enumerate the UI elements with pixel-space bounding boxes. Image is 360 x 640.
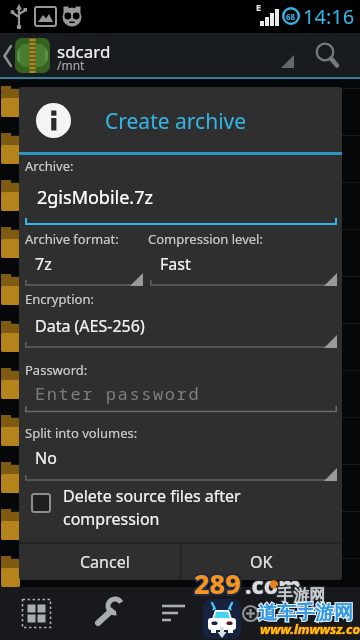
button[interactable]: OK — [181, 544, 342, 580]
button[interactable] — [22, 599, 51, 628]
button[interactable]: sdcard — [0, 33, 360, 79]
staticText: 2gisMobile.7z — [37, 185, 153, 210]
button[interactable]: No — [25, 443, 337, 481]
staticText: 手游网 — [277, 586, 325, 606]
staticText: /mnt — [57, 57, 85, 73]
button[interactable]: Cancel — [24, 544, 185, 580]
staticText: Cancel — [80, 551, 130, 573]
staticText: Encryption: — [25, 290, 94, 308]
staticText: sdcard — [57, 40, 111, 63]
staticText: 289 — [194, 565, 241, 602]
button[interactable] — [313, 41, 341, 69]
staticText: 道车手游网 — [258, 601, 353, 625]
staticText: .com — [245, 569, 301, 600]
staticText: Enter password — [35, 382, 201, 405]
staticText: Create archive — [105, 107, 247, 136]
button[interactable]: 2gisMobile.7z — [25, 175, 337, 226]
staticText: E — [256, 1, 262, 13]
button[interactable] — [203, 599, 241, 639]
staticText: 手游网 — [277, 586, 325, 606]
staticText: Data (AES-256) — [35, 315, 145, 337]
staticText: 道车手游网 — [258, 601, 353, 625]
staticText: .com — [245, 569, 301, 600]
button[interactable]: 7z — [25, 249, 143, 286]
staticText: www.lmwwsz.com — [260, 620, 360, 638]
staticText: 289 — [194, 565, 241, 602]
button[interactable]: Enter password — [25, 378, 337, 413]
button[interactable]: Delete source files after compression — [25, 485, 337, 533]
staticText: 7z — [35, 253, 52, 275]
staticText: www.lmwwsz.com — [260, 620, 360, 638]
staticText: Delete source files after compression — [63, 485, 241, 530]
button[interactable] — [162, 604, 186, 622]
staticText: 68 — [286, 11, 296, 22]
staticText: Compression level: — [148, 230, 263, 248]
staticText: OK — [250, 551, 273, 573]
button[interactable]: Data (AES-256) — [25, 309, 337, 348]
button[interactable] — [92, 598, 125, 628]
staticText: No — [35, 447, 57, 469]
staticText: Password: — [25, 361, 88, 379]
staticText: 14:16 — [303, 3, 355, 30]
button[interactable]: Fast — [150, 249, 337, 286]
staticText: Fast — [160, 253, 191, 275]
staticText: Archive format: — [25, 230, 119, 248]
staticText: Archive: — [25, 157, 74, 175]
staticText: Split into volumes: — [25, 424, 138, 442]
